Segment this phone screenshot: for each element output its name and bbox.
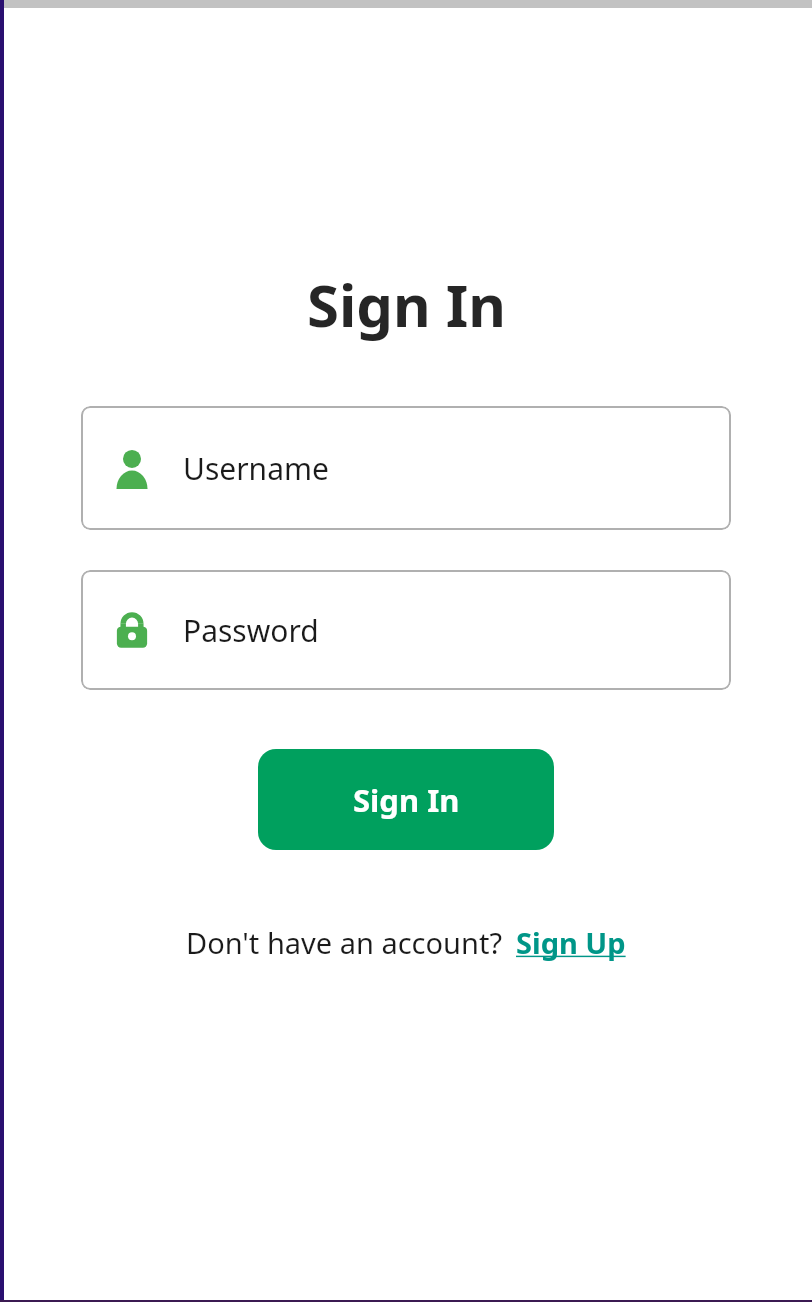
staticText: Sign In [353,779,460,821]
button[interactable]: Password [81,570,731,690]
button[interactable]: Username [81,406,731,530]
button[interactable]: Sign Up [516,923,626,962]
staticText: Username [183,448,329,489]
staticText: Sign In [307,265,506,344]
button[interactable]: Sign In [258,749,554,850]
staticText: Sign Up [516,923,626,962]
staticText: Password [183,610,319,651]
other: Password [110,608,154,652]
staticText: Don't have an account? [186,923,502,962]
other: Username [110,446,154,490]
